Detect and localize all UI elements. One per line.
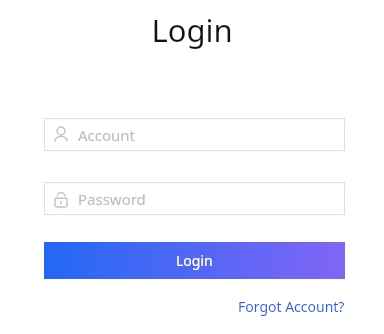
staticText: Login [176,251,213,270]
button[interactable]: Forgot Account? [238,297,345,316]
button[interactable]: Account [44,118,345,151]
button[interactable]: Login [44,242,345,279]
staticText: Account [78,125,136,145]
staticText: Password [78,189,146,209]
staticText: Login [0,9,384,51]
button[interactable]: Password [44,182,345,215]
staticText: Forgot Account? [238,297,345,316]
